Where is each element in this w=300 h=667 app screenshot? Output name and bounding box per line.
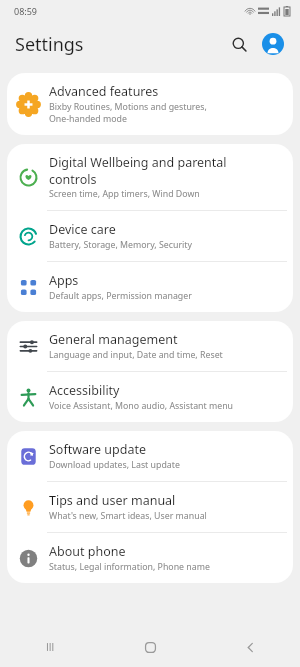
button[interactable]: Device care xyxy=(7,211,293,261)
staticText: Tips and user manual xyxy=(49,492,176,509)
staticText: Voice Assistant, Mono audio, Assistant m… xyxy=(49,400,234,412)
staticText: Device care xyxy=(49,221,116,238)
button[interactable]: Back xyxy=(200,627,300,667)
staticText: Download updates, Last update xyxy=(49,459,180,471)
button[interactable]: Recent apps xyxy=(0,627,100,667)
staticText: Bixby Routines, Motions and gestures, On… xyxy=(49,101,207,125)
staticText: Apps xyxy=(49,272,79,289)
button[interactable]: General management xyxy=(7,321,293,371)
staticText: 08:59 xyxy=(14,5,38,17)
button[interactable]: Home xyxy=(100,627,200,667)
button[interactable]: Advanced features xyxy=(7,73,293,135)
button[interactable]: About phone xyxy=(7,533,293,583)
staticText: Status, Legal information, Phone name xyxy=(49,561,210,573)
button[interactable]: Digital Wellbeing and parental controls xyxy=(7,144,293,210)
button[interactable]: Software update xyxy=(7,431,293,481)
staticText: What's new, Smart ideas, User manual xyxy=(49,510,207,522)
staticText: Language and input, Date and time, Reset xyxy=(49,349,223,361)
button[interactable]: Apps xyxy=(7,262,293,312)
staticText: Default apps, Permission manager xyxy=(49,290,192,302)
staticText: Battery, Storage, Memory, Security xyxy=(49,239,193,251)
staticText: Accessibility xyxy=(49,382,120,399)
button[interactable]: Tips and user manual xyxy=(7,482,293,532)
button[interactable]: Search xyxy=(224,29,254,59)
staticText: About phone xyxy=(49,543,126,560)
button[interactable]: Accessibility xyxy=(7,372,293,422)
staticText: Digital Wellbeing and parental controls xyxy=(49,154,227,187)
staticText: Screen time, App timers, Wind Down xyxy=(49,188,200,200)
staticText: Advanced features xyxy=(49,83,159,100)
staticText: General management xyxy=(49,331,178,348)
button[interactable]: Account xyxy=(258,29,288,59)
staticText: Settings xyxy=(15,32,84,57)
staticText: Software update xyxy=(49,441,146,458)
